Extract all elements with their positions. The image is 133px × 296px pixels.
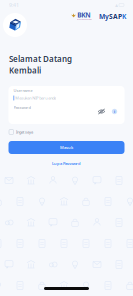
staticText: ▲ — [115, 3, 118, 7]
staticText: Password — [13, 105, 30, 110]
staticText: Ingat saya — [16, 129, 33, 135]
staticText: K — [122, 12, 126, 21]
button[interactable]: Ingat saya — [9, 128, 61, 136]
staticText: i — [114, 109, 115, 114]
staticText: Selamat Datang — [9, 54, 72, 64]
staticText: 9:41 — [9, 1, 19, 9]
staticText: Kembali — [9, 65, 41, 76]
staticText: Masuk — [60, 145, 73, 150]
staticText: BADAN KEPEGAWAIAN — [77, 19, 92, 20]
staticText: Lupa Password — [52, 161, 81, 166]
staticText: Username — [13, 88, 32, 93]
button[interactable]: Lupa Password — [0, 159, 133, 168]
button[interactable]: Masuk — [8, 141, 124, 154]
button[interactable]: Show password — [96, 106, 106, 116]
staticText: SAP — [109, 12, 122, 21]
staticText: BKN — [77, 11, 90, 19]
staticText: Masukan NIP baru anda — [15, 95, 56, 101]
button[interactable]: Password info — [109, 106, 119, 116]
staticText: My — [99, 12, 109, 21]
